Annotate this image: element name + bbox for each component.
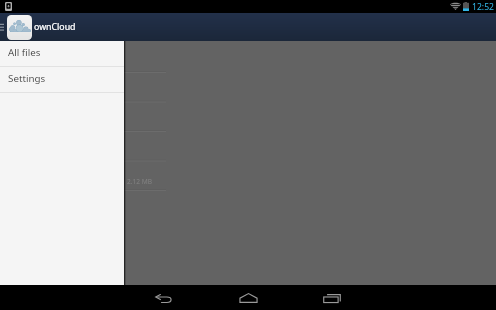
staticText: All files — [8, 46, 41, 59]
button[interactable]: Settings — [0, 67, 124, 93]
staticText: Settings — [8, 72, 46, 85]
staticText: 2.12 MB — [127, 177, 153, 186]
staticText: 12:52 — [472, 1, 494, 13]
button[interactable]: Back — [122, 285, 206, 310]
staticText: ownCloud — [34, 21, 76, 33]
button[interactable]: Open navigation drawer — [0, 13, 6, 41]
button[interactable]: Home — [206, 285, 290, 310]
button[interactable]: Recent apps — [290, 285, 374, 310]
button[interactable]: All files — [0, 41, 124, 67]
